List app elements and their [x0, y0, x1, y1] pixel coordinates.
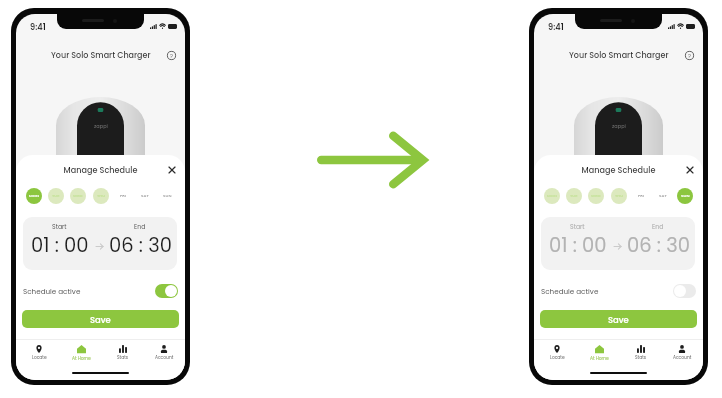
staticText: zappi	[612, 123, 626, 130]
staticText: ?	[170, 52, 173, 60]
button[interactable]: Stats	[109, 345, 137, 360]
staticText: FRI	[120, 193, 126, 199]
staticText: SAT	[141, 193, 149, 199]
staticText: ?	[688, 52, 691, 60]
button[interactable]: WED	[70, 188, 86, 204]
staticText: SUN	[681, 193, 690, 199]
staticText: SUN	[163, 193, 172, 199]
staticText: Manage Schedule	[534, 164, 703, 175]
staticText: Schedule active	[541, 286, 599, 296]
staticText: 06 : 30	[109, 232, 172, 259]
staticText: FRI	[638, 193, 644, 199]
button[interactable]: FRI	[633, 188, 649, 204]
button[interactable]: THU	[93, 188, 109, 204]
staticText: Locate	[32, 354, 47, 360]
staticText: Account	[155, 354, 174, 360]
staticText: Save	[608, 314, 629, 326]
button[interactable]: SUN	[677, 188, 693, 204]
button[interactable]: Locate	[25, 345, 53, 360]
staticText: WED	[73, 193, 83, 199]
button[interactable]: Close	[165, 163, 179, 177]
button[interactable]: Help	[683, 49, 696, 62]
staticText: Your Solo Smart Charger	[51, 50, 151, 61]
staticText: At Home	[590, 355, 609, 361]
staticText: THU	[97, 193, 106, 199]
staticText: 01 : 00	[31, 232, 89, 259]
staticText: End	[652, 222, 664, 231]
button[interactable]: Stats	[627, 345, 655, 360]
staticText: Save	[90, 314, 111, 326]
button[interactable]: At Home	[67, 345, 95, 361]
staticText: SAT	[659, 193, 667, 199]
button[interactable]: FRI	[115, 188, 131, 204]
staticText: Start	[570, 222, 585, 231]
button[interactable]: Save	[540, 310, 697, 328]
button[interactable]: TUE	[48, 188, 64, 204]
staticText: At Home	[72, 355, 91, 361]
staticText: zappi	[94, 123, 108, 130]
staticText: End	[134, 222, 146, 231]
button[interactable]: Account	[150, 345, 178, 360]
staticText: 9:41	[30, 21, 46, 32]
staticText: Stats	[635, 354, 647, 360]
button[interactable]	[673, 284, 696, 298]
staticText: Your Solo Smart Charger	[569, 50, 669, 61]
staticText: Stats	[117, 354, 129, 360]
button[interactable]: SAT	[655, 188, 671, 204]
staticText: MON	[547, 193, 557, 199]
button[interactable]: SAT	[137, 188, 153, 204]
button[interactable]: Locate	[543, 345, 571, 360]
button[interactable]: THU	[611, 188, 627, 204]
button[interactable]: Help	[165, 49, 178, 62]
staticText: THU	[615, 193, 624, 199]
button[interactable]: WED	[588, 188, 604, 204]
staticText: 06 : 30	[627, 232, 690, 259]
staticText: MON	[29, 193, 39, 199]
staticText: 01 : 00	[549, 232, 607, 259]
button[interactable]: Save	[22, 310, 179, 328]
staticText: TUE	[570, 193, 578, 199]
staticText: 9:41	[548, 21, 564, 32]
staticText: Start	[52, 222, 67, 231]
button[interactable]: At Home	[585, 345, 613, 361]
button[interactable]: TUE	[566, 188, 582, 204]
button[interactable]	[155, 284, 178, 298]
staticText: Schedule active	[23, 286, 81, 296]
staticText: Locate	[550, 354, 565, 360]
button[interactable]: Account	[668, 345, 696, 360]
staticText: Account	[673, 354, 692, 360]
button[interactable]: Close	[683, 163, 697, 177]
staticText: TUE	[52, 193, 60, 199]
staticText: Manage Schedule	[16, 164, 185, 175]
staticText: WED	[591, 193, 601, 199]
button[interactable]: MON	[544, 188, 560, 204]
button[interactable]: SUN	[159, 188, 175, 204]
button[interactable]: MON	[26, 188, 42, 204]
